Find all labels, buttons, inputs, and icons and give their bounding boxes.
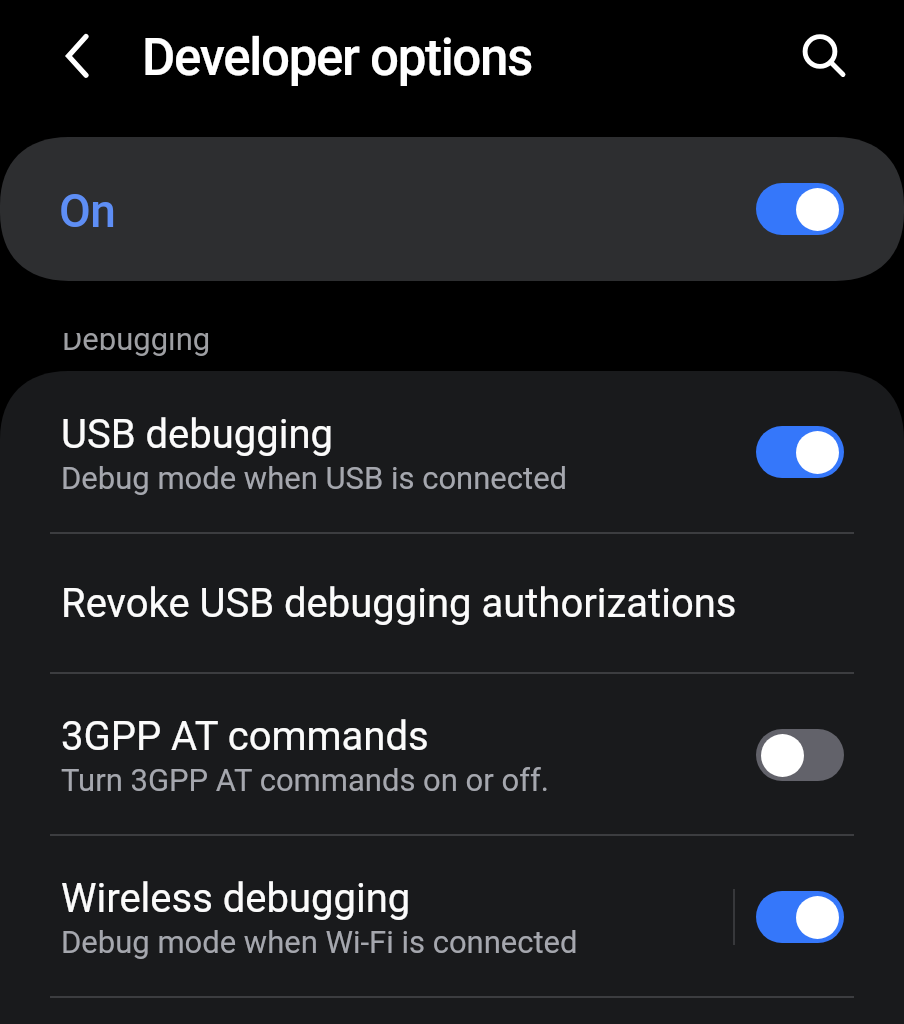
staticText: Debug mode when Wi-Fi is connected	[61, 924, 578, 960]
button[interactable]: On	[0, 137, 904, 281]
button[interactable]	[756, 183, 844, 235]
button[interactable]: USB debugging	[0, 371, 904, 533]
button[interactable]: Revoke USB debugging authorizations	[0, 534, 904, 673]
staticText: 3GPP AT commands	[61, 713, 429, 760]
staticText: Turn 3GPP AT commands on or off.	[61, 762, 549, 798]
button[interactable]: Wireless debugging	[0, 836, 904, 997]
button[interactable]	[756, 426, 844, 478]
staticText: Debug mode when USB is connected	[61, 460, 568, 496]
staticText: Wireless debugging	[61, 875, 411, 922]
staticText: Developer options	[142, 28, 533, 88]
button[interactable]: Search	[778, 10, 862, 94]
button[interactable]	[756, 891, 844, 943]
staticText: USB debugging	[61, 411, 334, 458]
staticText: Revoke USB debugging authorizations	[61, 580, 737, 627]
staticText: Debugging	[62, 333, 211, 357]
button[interactable]: 3GPP AT commands	[0, 674, 904, 835]
button[interactable]	[756, 729, 844, 781]
staticText: On	[59, 184, 116, 238]
button[interactable]: Navigate up	[36, 14, 120, 98]
